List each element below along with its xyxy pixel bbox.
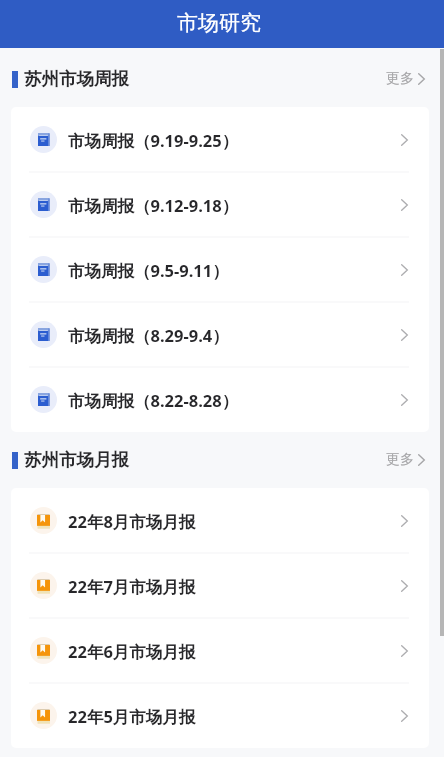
button[interactable]: 22年6月市场月报 <box>11 618 429 683</box>
staticText: 市场周报（8.29-9.4） <box>68 324 229 347</box>
button[interactable]: 市场周报（9.19-9.25） <box>11 107 429 172</box>
staticText: 更多 <box>386 70 414 88</box>
staticText: 苏州市场月报 <box>24 449 129 471</box>
button[interactable]: 22年8月市场月报 <box>11 488 429 553</box>
button[interactable]: 22年7月市场月报 <box>11 553 429 618</box>
button[interactable]: 市场周报（8.29-9.4） <box>11 302 429 367</box>
button[interactable]: 市场周报（9.5-9.11） <box>11 237 429 302</box>
staticText: 市场周报（9.5-9.11） <box>68 259 229 282</box>
staticText: 市场周报（9.12-9.18） <box>68 194 239 217</box>
staticText: 22年8月市场月报 <box>68 510 196 533</box>
button[interactable]: 市场周报（8.22-8.28） <box>11 367 429 432</box>
staticText: 22年7月市场月报 <box>68 575 196 598</box>
button[interactable]: 更多 <box>386 445 425 475</box>
staticText: 市场周报（8.22-8.28） <box>68 389 239 412</box>
staticText: 市场研究 <box>177 10 261 36</box>
staticText: 苏州市场周报 <box>24 68 129 90</box>
staticText: 市场周报（9.19-9.25） <box>68 129 239 152</box>
button[interactable]: 更多 <box>386 64 425 94</box>
button[interactable]: 市场周报（9.12-9.18） <box>11 172 429 237</box>
staticText: 22年6月市场月报 <box>68 640 196 663</box>
staticText: 22年5月市场月报 <box>68 705 196 728</box>
staticText: 更多 <box>386 451 414 469</box>
button[interactable]: 22年5月市场月报 <box>11 683 429 748</box>
